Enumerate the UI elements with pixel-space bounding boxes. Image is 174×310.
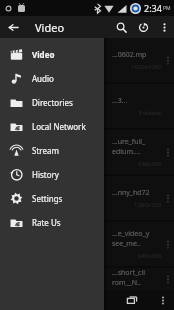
staticText: 2:34 — [144, 2, 162, 14]
button[interactable]: Item menu — [162, 268, 174, 290]
staticText: Video — [35, 20, 65, 35]
staticText: History — [32, 169, 59, 180]
button[interactable]: Refresh — [132, 16, 154, 38]
staticText: Stream — [32, 145, 59, 156]
staticText: 1920x1080 — [131, 63, 162, 71]
staticText: 3 videos — [138, 109, 162, 117]
button[interactable]: ...e_video_y see_me.. — [0, 222, 174, 266]
button[interactable]: Local Network — [0, 114, 104, 138]
button[interactable]: Item menu — [162, 222, 174, 266]
button[interactable]: Audio — [0, 66, 104, 90]
button[interactable]: Recents — [113, 290, 151, 310]
staticText: Directories — [32, 97, 73, 108]
button[interactable]: More options — [154, 16, 174, 38]
button[interactable]: Search — [110, 16, 132, 38]
button[interactable]: ...short_cli rom__N.. — [0, 268, 174, 290]
button[interactable]: ...0602.mp — [0, 38, 174, 82]
button[interactable]: History — [0, 162, 104, 186]
staticText: ...ure_full_ edium.... — [112, 137, 146, 157]
button[interactable]: Directories — [0, 90, 104, 114]
staticText: Video — [32, 49, 55, 60]
staticText: 640x360 — [138, 160, 162, 168]
staticText: ...3... — [112, 96, 128, 106]
staticText: ...0602.mp — [112, 50, 147, 60]
button[interactable]: Settings — [0, 186, 104, 210]
button[interactable]: ...nny_hd72 — [0, 176, 174, 220]
staticText: ...short_cli rom__N.. — [112, 268, 146, 288]
staticText: ...e_video_y see_me.. — [112, 229, 150, 249]
staticText: Rate Us — [32, 217, 61, 228]
staticText: Settings — [32, 193, 63, 204]
button[interactable]: ...ure_full_ edium.... — [0, 130, 174, 174]
button[interactable]: Home — [75, 290, 113, 310]
button[interactable]: Video — [0, 42, 104, 66]
button[interactable]: Back — [0, 16, 26, 38]
staticText: 640x360 — [138, 252, 162, 260]
button[interactable]: More options — [151, 290, 174, 310]
button[interactable]: Stream — [0, 138, 104, 162]
button[interactable]: Item menu — [162, 130, 174, 174]
button[interactable]: ...3... — [0, 84, 174, 128]
button[interactable]: Rate Us — [0, 210, 104, 234]
staticText: Local Network — [32, 121, 86, 132]
staticText: PM — [163, 5, 171, 12]
button[interactable]: Item menu — [162, 176, 174, 220]
staticText: ...nny_hd72 — [112, 188, 150, 198]
staticText: 1280x720 — [134, 201, 162, 209]
staticText: Audio — [32, 73, 54, 84]
button[interactable]: Item menu — [162, 38, 174, 82]
